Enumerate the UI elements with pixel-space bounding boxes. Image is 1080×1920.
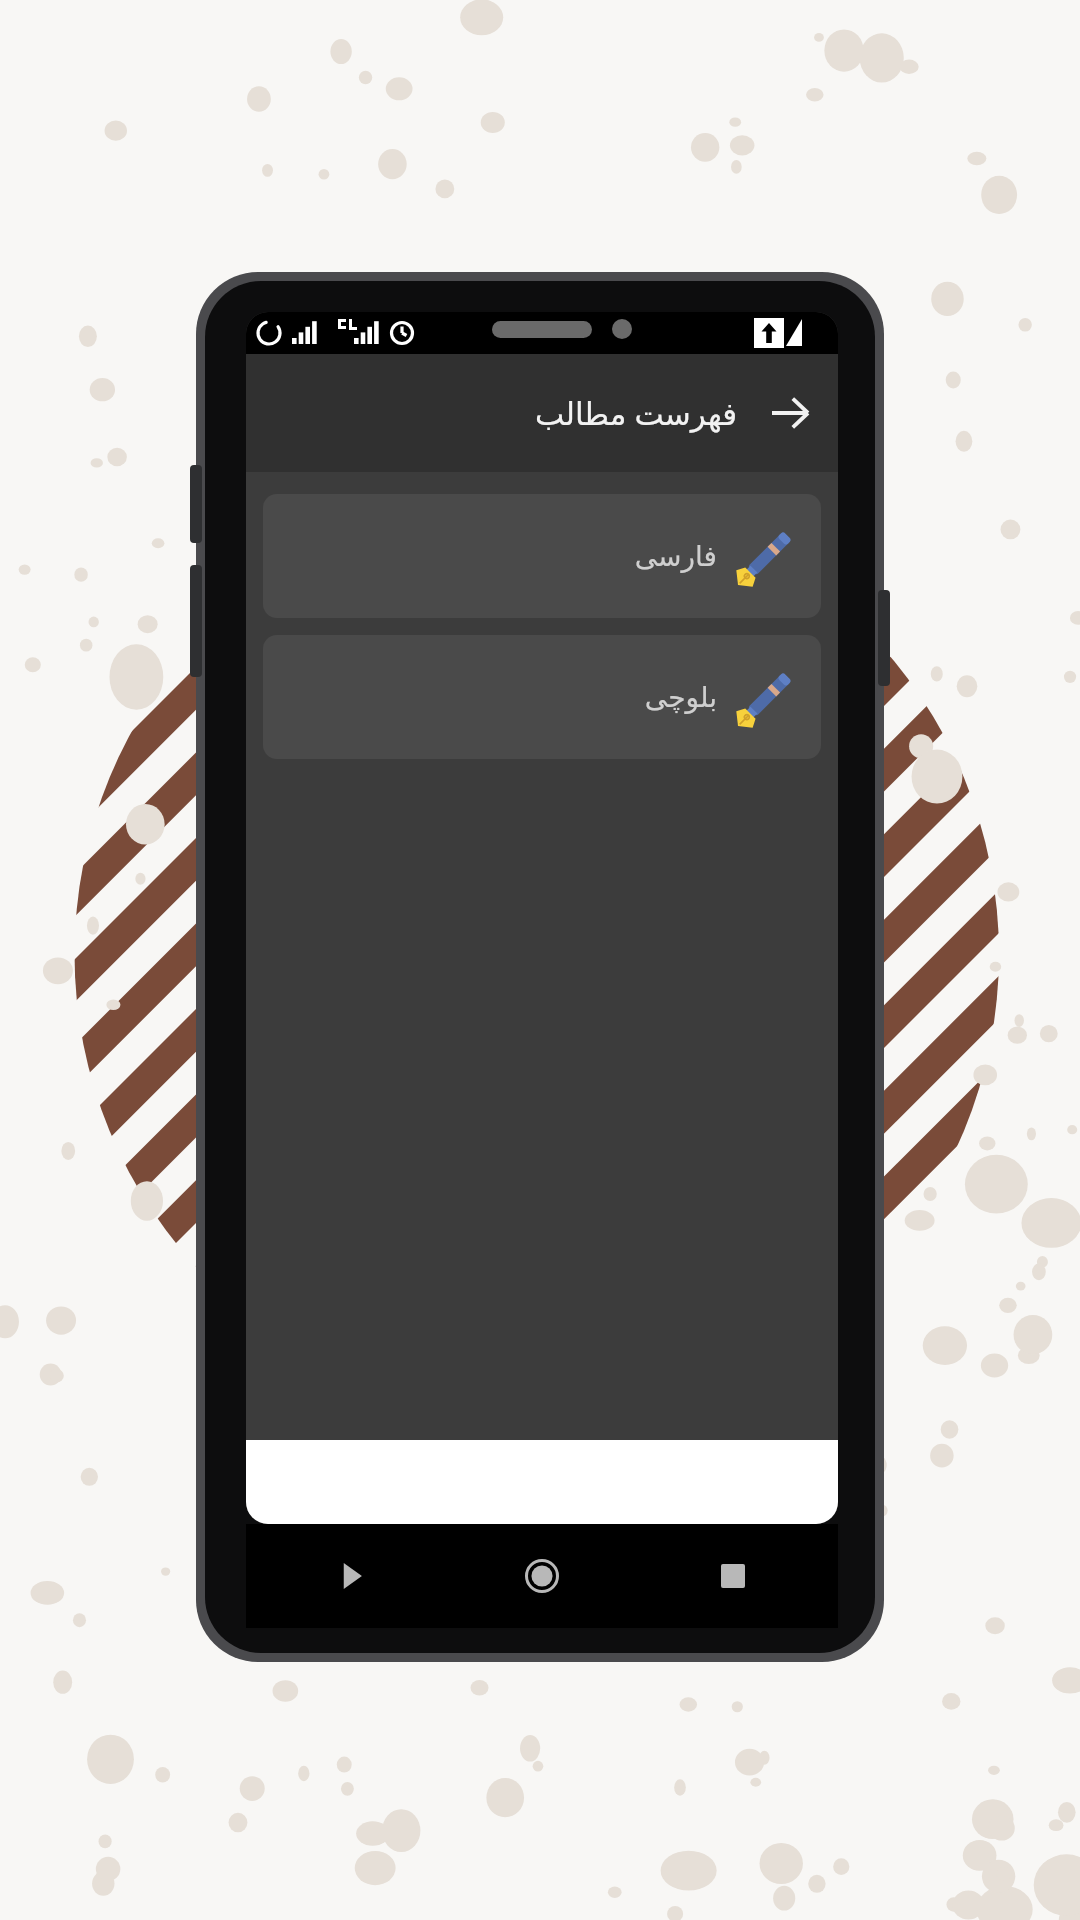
button[interactable]: فارسی (263, 494, 821, 618)
staticText: فهرست مطالب (535, 392, 738, 434)
button[interactable]: Recent apps (706, 1549, 760, 1603)
button[interactable]: Back (324, 1549, 378, 1603)
staticText: فارسی (634, 540, 717, 573)
button[interactable]: بلوچی (263, 635, 821, 759)
staticText: بلوچی (644, 681, 717, 714)
button[interactable]: Home (515, 1549, 569, 1603)
button[interactable]: Back (758, 381, 822, 445)
